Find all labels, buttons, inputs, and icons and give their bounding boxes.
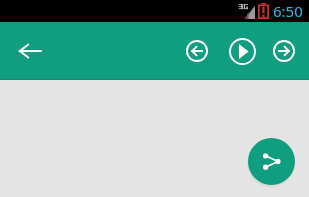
button[interactable]: Play [224, 33, 260, 69]
button[interactable]: Share [248, 138, 295, 185]
staticText: 6:50 [273, 1, 303, 21]
button[interactable]: Previous [179, 33, 215, 69]
button[interactable]: Back [12, 33, 48, 69]
button[interactable]: Next [266, 33, 302, 69]
